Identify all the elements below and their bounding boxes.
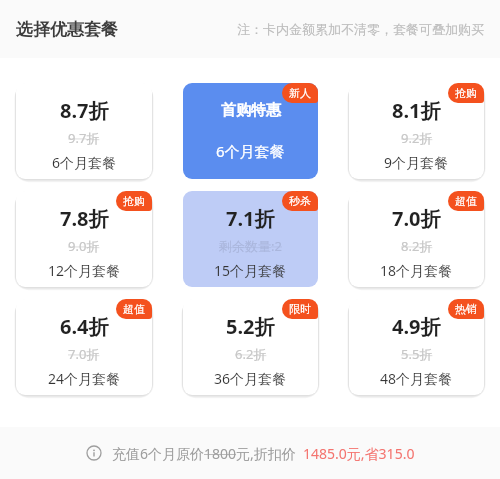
staticText: 9.2折 [401,129,433,147]
button[interactable]: 7.1折 [183,191,318,287]
staticText: 首购特惠 [221,101,281,120]
button[interactable]: 7.0折 [349,191,484,287]
staticText: 充值6个月原价1800元,折扣价 1485.0元,省315.0 [112,444,415,463]
staticText: 24个月套餐 [48,369,121,388]
staticText: 超值 [123,302,145,316]
staticText: 热销 [455,302,477,316]
staticText: 9个月套餐 [384,153,449,172]
staticText: 6个月套餐 [216,141,285,161]
staticText: 选择优惠套餐 [16,19,118,40]
staticText: 5.2折 [226,313,275,340]
staticText: 36个月套餐 [214,369,287,388]
staticText: 抢购 [455,86,477,100]
staticText: 剩余数量:2 [219,237,282,255]
staticText: 18个月套餐 [380,261,453,280]
button[interactable]: 8.1折 [349,83,484,179]
staticText: 7.1折 [226,205,275,232]
button[interactable]: 4.9折 [349,299,484,395]
staticText: 秒杀 [289,194,311,208]
staticText: 超值 [455,194,477,208]
staticText: 4.9折 [392,313,441,340]
staticText: 9.7折 [68,129,100,147]
staticText: 12个月套餐 [48,261,121,280]
staticText: 8.2折 [401,237,433,255]
staticText: 新人 [289,86,311,100]
button[interactable]: 5.2折 [183,299,318,395]
button[interactable]: 首购特惠 [183,83,318,179]
staticText: 7.0折 [68,345,100,363]
staticText: 48个月套餐 [380,369,453,388]
staticText: 8.1折 [392,97,441,124]
staticText: 7.0折 [392,205,441,232]
button[interactable]: 8.7折 [16,83,152,179]
staticText: 8.7折 [60,97,109,124]
staticText: 6个月套餐 [52,153,117,172]
staticText: 限时 [289,302,311,316]
staticText: 6.2折 [235,345,267,363]
staticText: 6.4折 [60,313,109,340]
staticText: 注：卡内金额累加不清零，套餐可叠加购买 [237,21,484,37]
staticText: 15个月套餐 [214,261,287,280]
staticText: 7.8折 [60,205,109,232]
staticText: 5.5折 [401,345,433,363]
button[interactable]: 7.8折 [16,191,152,287]
button[interactable]: 6.4折 [16,299,152,395]
staticText: 抢购 [123,194,145,208]
staticText: 9.0折 [68,237,100,255]
